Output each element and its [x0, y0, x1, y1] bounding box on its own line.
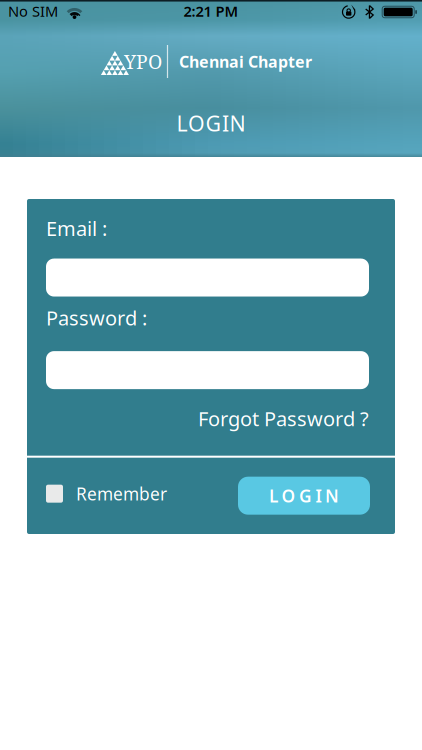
staticText: Chennai Chapter — [179, 51, 312, 72]
staticText: LOGIN — [269, 484, 339, 507]
staticText: YPO — [124, 48, 162, 75]
staticText: LOGIN — [176, 109, 245, 137]
button[interactable]: Remember — [46, 484, 167, 507]
button[interactable]: Email — [46, 259, 369, 297]
staticText: No SIM — [8, 1, 58, 21]
staticText: Forgot Password ? — [198, 405, 369, 432]
button[interactable]: Password — [46, 351, 369, 389]
button[interactable]: Forgot Password ? — [198, 405, 369, 432]
staticText: 2:21 PM — [183, 1, 238, 21]
staticText: Password : — [46, 305, 147, 331]
button[interactable]: LOGIN — [238, 477, 370, 515]
staticText: Remember — [76, 482, 167, 505]
staticText: Email : — [46, 215, 107, 242]
